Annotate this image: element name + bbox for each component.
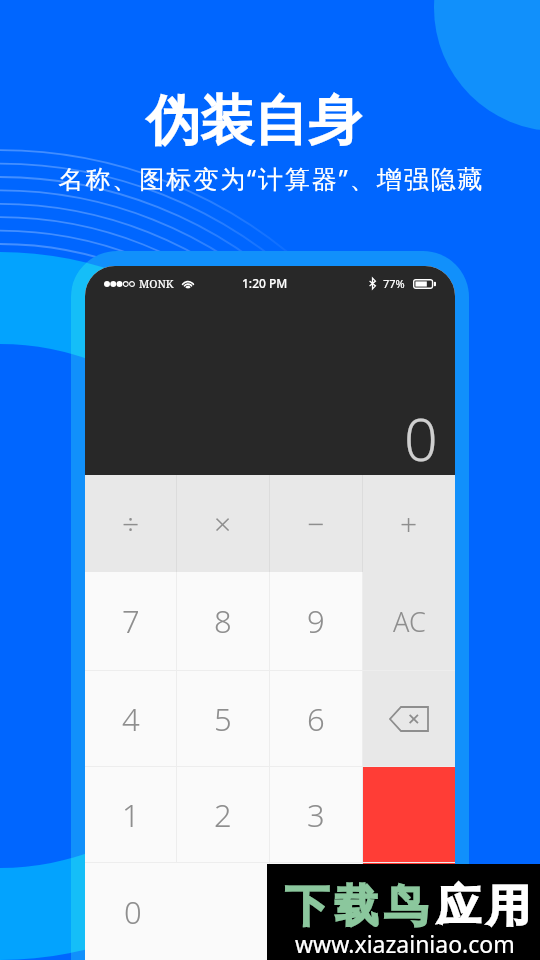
staticText: 应用 bbox=[434, 879, 533, 934]
staticText: 8 bbox=[214, 600, 232, 642]
button[interactable]: + bbox=[363, 475, 455, 572]
button[interactable]: 3 bbox=[270, 767, 362, 862]
staticText: 2 bbox=[214, 794, 232, 836]
staticText: 77% bbox=[383, 276, 405, 291]
staticText: ÷ bbox=[122, 503, 140, 544]
staticText: AC bbox=[393, 603, 426, 640]
button[interactable]: 2 bbox=[177, 767, 269, 862]
button[interactable]: 1 bbox=[85, 767, 176, 862]
staticText: . bbox=[312, 891, 320, 933]
staticText: × bbox=[214, 503, 232, 544]
staticText: + bbox=[400, 503, 418, 544]
staticText: 7 bbox=[122, 600, 140, 642]
button[interactable]: . bbox=[270, 863, 362, 960]
staticText: 名称、图标变为“计算器”、增强隐藏 bbox=[58, 161, 485, 195]
staticText: MONK bbox=[139, 276, 174, 291]
staticText: 0 bbox=[404, 398, 438, 478]
staticText: 伪装自身 bbox=[146, 87, 362, 155]
button[interactable]: − bbox=[270, 475, 362, 572]
button[interactable]: ÷ bbox=[85, 475, 176, 572]
button[interactable]: Equals bbox=[363, 863, 455, 960]
staticText: 3 bbox=[307, 794, 325, 836]
button[interactable]: 9 bbox=[270, 572, 362, 670]
staticText: − bbox=[307, 503, 325, 544]
staticText: 6 bbox=[307, 698, 325, 740]
button[interactable]: 4 bbox=[85, 671, 176, 766]
button[interactable]: 6 bbox=[270, 671, 362, 766]
staticText: 0 bbox=[124, 891, 142, 933]
button[interactable]: 8 bbox=[177, 572, 269, 670]
staticText: 4 bbox=[122, 698, 140, 740]
button[interactable]: Backspace bbox=[363, 671, 455, 766]
staticText: 下载鸟 bbox=[285, 879, 434, 934]
button[interactable]: AC bbox=[363, 572, 455, 670]
button[interactable]: 5 bbox=[177, 671, 269, 766]
staticText: 1 bbox=[122, 794, 140, 836]
staticText: 1:20 PM bbox=[242, 275, 288, 291]
staticText: 5 bbox=[214, 698, 232, 740]
button[interactable]: × bbox=[177, 475, 269, 572]
staticText: www.xiazainiao.com bbox=[295, 928, 515, 959]
staticText: 9 bbox=[307, 600, 325, 642]
button[interactable]: 0 bbox=[85, 863, 269, 960]
button[interactable]: 7 bbox=[85, 572, 176, 670]
